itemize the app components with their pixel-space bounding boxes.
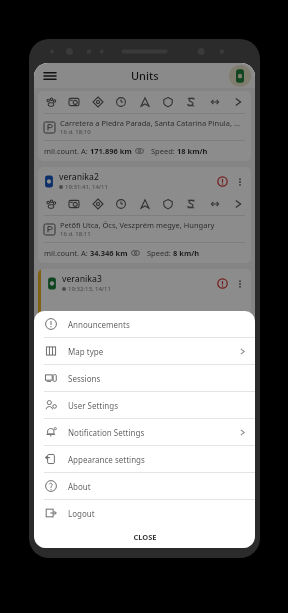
button[interactable]: Warning: [216, 175, 229, 188]
button[interactable]: Photo: [66, 94, 82, 110]
button[interactable]: Expand: [230, 94, 246, 110]
button[interactable]: History: [113, 94, 129, 110]
button[interactable]: Vehicle status: [229, 65, 251, 87]
staticText: 19:32:13, 14/11: [68, 285, 111, 293]
button[interactable]: CLOSE: [34, 526, 255, 548]
button[interactable]: Map type: [34, 338, 255, 364]
staticText: Appearance settings: [68, 454, 246, 465]
staticText: Announcements: [68, 319, 246, 330]
button[interactable]: Expand: [230, 196, 246, 212]
staticText: 34.346 km: [90, 248, 128, 258]
staticText: mil.count. A:: [44, 146, 90, 156]
button[interactable]: Photo: [66, 196, 82, 212]
staticText: 18 km/h: [177, 146, 208, 156]
button[interactable]: Link: [207, 94, 223, 110]
button[interactable]: About: [34, 473, 255, 499]
button[interactable]: Routes: [90, 196, 106, 212]
staticText: Logout: [68, 508, 246, 519]
button[interactable]: Navigate: [137, 196, 153, 212]
staticText: About: [68, 481, 246, 492]
button[interactable]: History: [113, 196, 129, 212]
button[interactable]: Sensors: [183, 94, 199, 110]
button[interactable]: veranika2: [38, 167, 251, 263]
button[interactable]: Appearance settings: [34, 446, 255, 472]
staticText: CLOSE: [133, 532, 157, 542]
button[interactable]: User Settings: [34, 392, 255, 418]
staticText: 8 km/h: [173, 248, 200, 258]
staticText: Carretera a Piedra Parada, Santa Catarin…: [60, 118, 240, 128]
button[interactable]: Track: [43, 94, 59, 110]
staticText: Map type: [68, 346, 239, 357]
staticText: Speed:: [147, 248, 173, 258]
staticText: User Settings: [68, 400, 246, 411]
button[interactable]: Shield: [160, 94, 176, 110]
staticText: 16 d. 18:10: [60, 128, 91, 136]
button[interactable]: Sessions: [34, 365, 255, 391]
staticText: Units: [131, 68, 159, 83]
button[interactable]: Navigate: [137, 94, 153, 110]
button[interactable]: Shield: [160, 196, 176, 212]
button[interactable]: More options: [233, 175, 246, 188]
staticText: 16 d. 18:11: [60, 230, 91, 238]
staticText: mil.count. A:: [44, 248, 90, 258]
button[interactable]: Track: [43, 196, 59, 212]
staticText: veranika3: [62, 273, 102, 285]
staticText: Speed:: [151, 146, 177, 156]
button[interactable]: Notification Settings: [34, 419, 255, 445]
button[interactable]: Link: [207, 196, 223, 212]
button[interactable]: Routes: [90, 94, 106, 110]
button[interactable]: veranika3: [38, 269, 251, 548]
button[interactable]: Announcements: [34, 311, 255, 337]
button[interactable]: Track: [38, 91, 251, 161]
button[interactable]: Warning: [216, 277, 229, 290]
button[interactable]: Sensors: [183, 196, 199, 212]
staticText: 19:31:41, 14/11: [65, 183, 108, 191]
button[interactable]: Open navigation menu: [40, 66, 60, 86]
button[interactable]: More options: [233, 277, 246, 290]
staticText: 171.896 km: [90, 146, 132, 156]
staticText: veranika2: [59, 171, 99, 183]
staticText: Petőfi Utca, Öcs, Veszprém megye, Hungar…: [60, 220, 215, 230]
staticText: Notification Settings: [68, 427, 239, 438]
button[interactable]: Logout: [34, 500, 255, 526]
staticText: Sessions: [68, 373, 246, 384]
